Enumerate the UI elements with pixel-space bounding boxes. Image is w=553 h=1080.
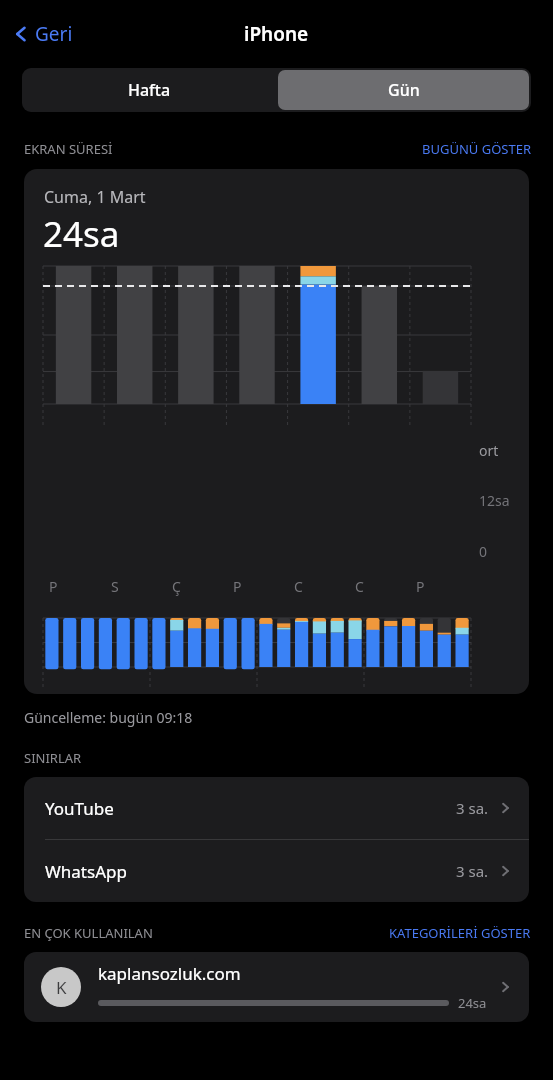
- staticText: C: [355, 577, 364, 596]
- staticText: 24sa: [458, 994, 487, 1012]
- staticText: EN ÇOK KULLANILAN: [24, 924, 153, 942]
- staticText: BUGÜNÜ GÖSTER: [422, 140, 531, 158]
- staticText: Hafta: [128, 79, 171, 101]
- staticText: Gün: [388, 79, 420, 101]
- staticText: EKRAN SÜRESİ: [24, 140, 113, 158]
- staticText: 24sa: [43, 210, 120, 258]
- button[interactable]: Hafta: [22, 68, 276, 112]
- button[interactable]: BUGÜNÜ GÖSTER: [422, 140, 531, 158]
- staticText: 3 sa.: [456, 798, 489, 818]
- staticText: C: [294, 577, 303, 596]
- other: Ayrıntılar: [497, 800, 513, 816]
- staticText: S: [111, 577, 119, 596]
- staticText: Ç: [172, 577, 181, 596]
- staticText: P: [233, 577, 242, 596]
- button[interactable]: KATEGORİLERİ GÖSTER: [389, 924, 531, 942]
- other: Ayrıntılar: [497, 979, 513, 995]
- staticText: P: [49, 577, 58, 596]
- button[interactable]: Geri: [10, 21, 73, 47]
- button[interactable]: WhatsApp: [24, 840, 529, 902]
- button[interactable]: YouTube: [24, 777, 529, 840]
- staticText: Güncelleme: bugün 09:18: [24, 708, 193, 727]
- staticText: iPhone: [244, 21, 309, 47]
- staticText: 3 sa.: [456, 861, 489, 881]
- staticText: SINIRLAR: [24, 749, 82, 767]
- staticText: Geri: [35, 21, 73, 47]
- staticText: 12sa: [479, 491, 510, 510]
- button[interactable]: K: [24, 952, 529, 1022]
- staticText: K: [56, 976, 67, 999]
- button[interactable]: Gün: [278, 70, 529, 110]
- staticText: Cuma, 1 Mart: [44, 186, 146, 208]
- staticText: kaplansozluk.com: [98, 962, 241, 985]
- other: Ayrıntılar: [497, 863, 513, 879]
- staticText: KATEGORİLERİ GÖSTER: [389, 924, 531, 942]
- staticText: P: [416, 577, 425, 596]
- staticText: ort: [479, 441, 499, 460]
- staticText: WhatsApp: [45, 860, 127, 883]
- staticText: YouTube: [45, 797, 114, 820]
- staticText: 0: [479, 542, 488, 561]
